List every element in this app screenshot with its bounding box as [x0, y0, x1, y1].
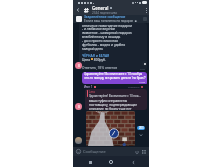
- button[interactable]: Recents: [85, 157, 95, 167]
- staticText: Ответить, 93% ответов: [82, 66, 117, 70]
- staticText: 800руб.: [93, 57, 106, 61]
- button[interactable]: Здравствуйте! Вы включите с 13 ноября чт…: [82, 72, 147, 84]
- staticText: отличные новогодние подарки - и любимое …: [82, 23, 132, 51]
- button[interactable]: Lera: [85, 89, 147, 110]
- staticText: изменено: [128, 85, 140, 88]
- staticText: Сообщение: [83, 149, 133, 154]
- button[interactable]: Stickers: [140, 148, 147, 155]
- staticText: Цена: [82, 57, 91, 61]
- button[interactable]: отличные новогодние подарки - и любимое …: [79, 23, 147, 70]
- button[interactable]: Back: [128, 157, 138, 167]
- button[interactable]: More options: [143, 5, 149, 15]
- staticText: ЧЁРНАЯ и БЕЛАЯ: [82, 53, 110, 57]
- staticText: ваши туфли отправлены поставщику, подтве…: [89, 99, 138, 110]
- staticText: 2344 подписчика: [92, 11, 118, 15]
- button[interactable]: Back: [73, 5, 83, 15]
- staticText: Июн 1: [84, 85, 93, 89]
- staticText: B: [78, 64, 80, 68]
- staticText: 13:06: [139, 80, 146, 83]
- button[interactable]: Home: [106, 157, 116, 167]
- button[interactable]: Attach: [133, 148, 140, 155]
- staticText: Если в ваш пятилетка по подарок ▪: [84, 19, 137, 23]
- staticText: Здравствуйте! Вы включите с 13 ноября чт…: [84, 72, 146, 80]
- staticText: B: [78, 105, 80, 109]
- staticText: General: [92, 5, 109, 11]
- button[interactable]: React: [142, 61, 147, 66]
- staticText: Закреплённое сообщение: [84, 15, 126, 19]
- staticText: 13:0: [140, 67, 145, 70]
- button[interactable]: Emoji: [75, 148, 82, 155]
- button[interactable]: Scroll to bottom: [136, 130, 146, 140]
- staticText: Lera: [89, 90, 95, 94]
- staticText: Здравствуйте! Вы включите с 13 ноя...: [89, 94, 141, 98]
- button[interactable]: Back: [73, 5, 149, 15]
- button[interactable]: Photo: [86, 111, 135, 146]
- button[interactable]: Закреплённое сообщение: [73, 15, 149, 23]
- staticText: 203: [139, 126, 144, 130]
